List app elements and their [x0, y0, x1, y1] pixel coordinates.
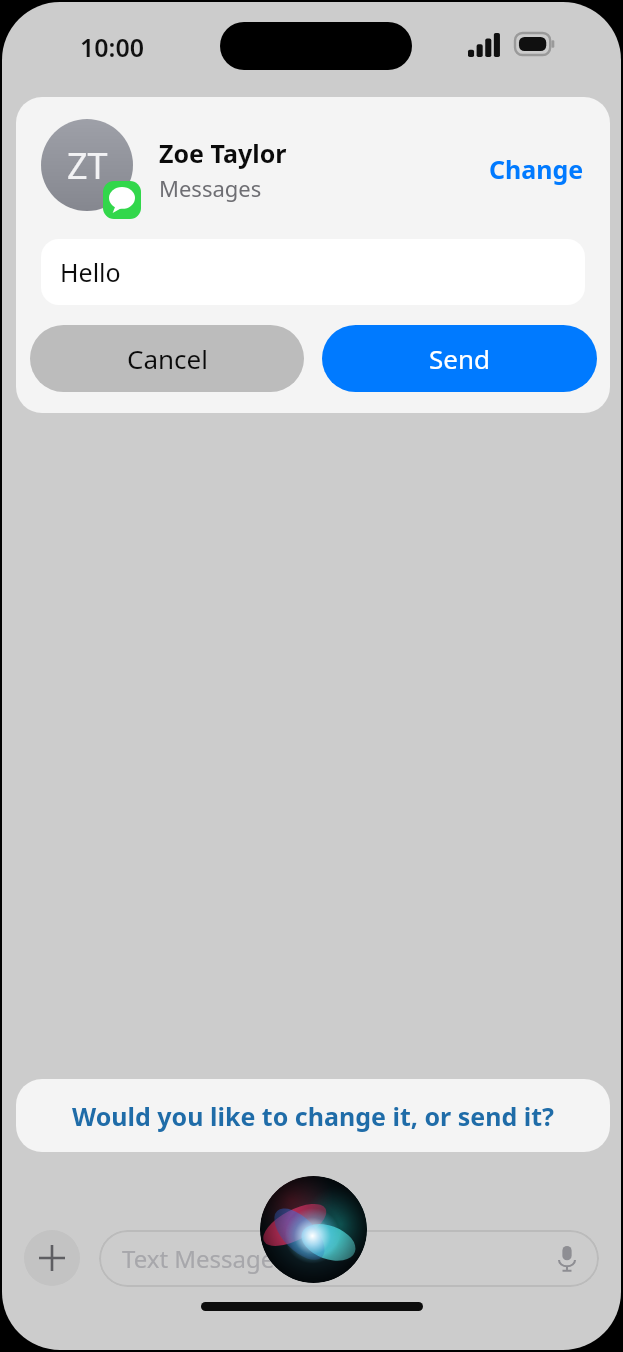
staticText: Would you like to change it, or send it? [72, 1099, 554, 1133]
other: Siri [260, 1176, 367, 1283]
button[interactable]: Send [322, 325, 597, 392]
button[interactable]: Change [485, 146, 588, 192]
button[interactable]: Hello [41, 239, 585, 305]
staticText: ZT [67, 141, 108, 190]
staticText: Zoe Taylor [159, 136, 287, 170]
button[interactable]: Cancel [30, 325, 304, 392]
staticText: Change [489, 152, 584, 186]
button[interactable]: Would you like to change it, or send it? [16, 1079, 610, 1152]
button[interactable]: Text Message [99, 1230, 599, 1287]
button[interactable]: Add attachment [24, 1230, 80, 1286]
staticText: 10:00 [80, 30, 145, 64]
staticText: Hello [60, 255, 121, 289]
staticText: Send [429, 341, 490, 376]
staticText: Messages [159, 173, 262, 203]
staticText: Cancel [127, 341, 208, 376]
button[interactable]: Dictate [549, 1241, 585, 1277]
staticText: Text Message [122, 1242, 275, 1275]
